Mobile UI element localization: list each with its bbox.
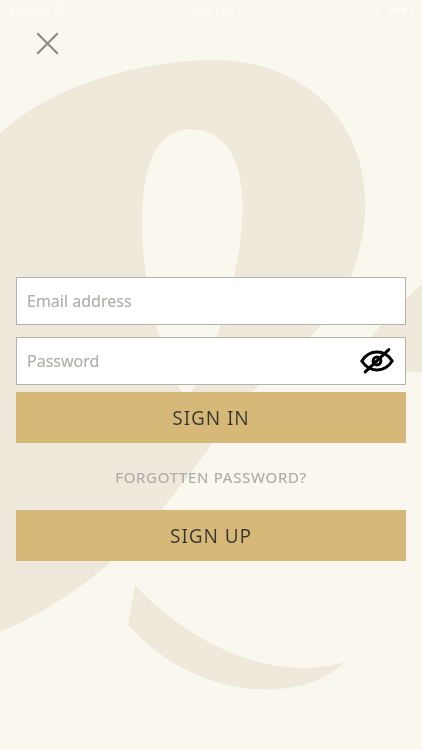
staticText: SIGN IN: [172, 405, 250, 431]
staticText: SIGN UP: [170, 523, 252, 549]
button[interactable]: Email address: [16, 277, 406, 325]
staticText: Password: [27, 350, 100, 372]
button[interactable]: SIGN IN: [16, 392, 406, 443]
button[interactable]: FORGOTTEN PASSWORD?: [16, 443, 406, 510]
staticText: Email address: [27, 290, 132, 312]
button[interactable]: Close: [28, 24, 66, 62]
button[interactable]: SIGN UP: [16, 510, 406, 561]
button[interactable]: Password: [16, 337, 406, 385]
staticText: FORGOTTEN PASSWORD?: [115, 467, 307, 487]
button[interactable]: Show password: [355, 339, 399, 383]
